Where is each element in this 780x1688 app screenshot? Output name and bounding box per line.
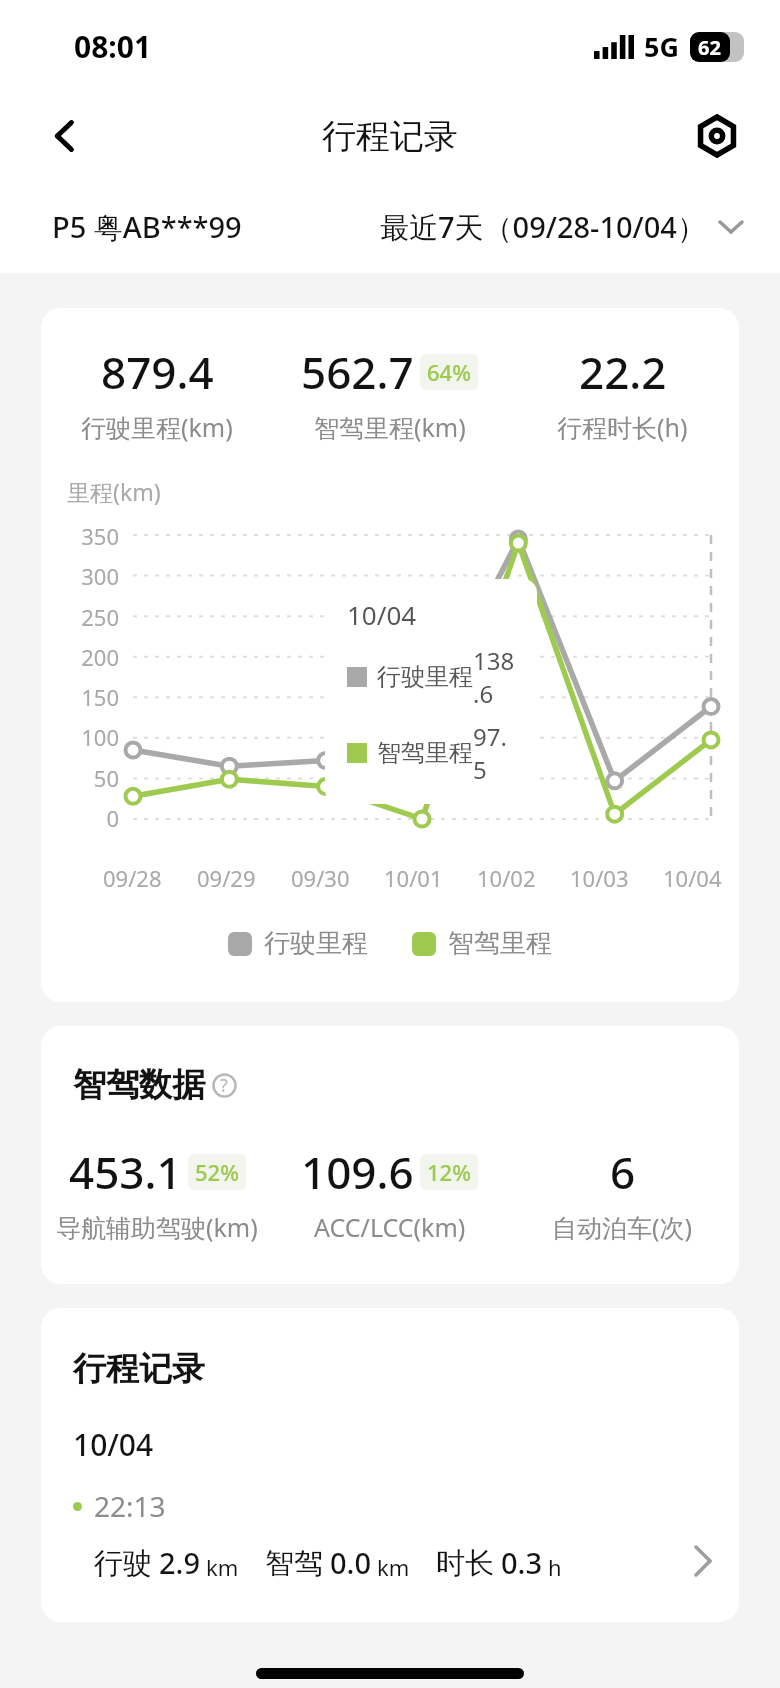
staticText: 453.1 bbox=[69, 1142, 182, 1202]
staticText: 62 bbox=[698, 34, 721, 61]
staticText: 08:01 bbox=[74, 26, 152, 67]
staticText: 52% bbox=[195, 1157, 239, 1187]
staticText: 22:13 bbox=[94, 1487, 166, 1525]
button[interactable]: 22:13 bbox=[41, 1487, 739, 1582]
staticText: 2.9 bbox=[159, 1543, 201, 1582]
staticText: 时长 bbox=[436, 1545, 494, 1582]
staticText: 10/04 bbox=[73, 1424, 154, 1465]
staticText: 109.6 bbox=[301, 1142, 414, 1202]
staticText: 97.5 bbox=[473, 720, 515, 786]
staticText: 64% bbox=[427, 357, 471, 387]
button[interactable]: Info bbox=[209, 1070, 239, 1100]
staticText: 09/29 bbox=[197, 863, 256, 893]
staticText: 行程记录 bbox=[322, 115, 458, 158]
staticText: 22.2 bbox=[579, 342, 667, 402]
staticText: 行驶里程 bbox=[377, 662, 473, 692]
staticText: 350 bbox=[81, 521, 119, 551]
staticText: ACC/LCC(km) bbox=[314, 1210, 466, 1244]
staticText: 300 bbox=[81, 561, 119, 591]
staticText: 0 bbox=[106, 803, 119, 833]
staticText: 12% bbox=[427, 1157, 471, 1187]
staticText: 行驶里程 bbox=[264, 927, 368, 960]
staticText: 10/01 bbox=[384, 863, 443, 893]
staticText: 自动泊车(次) bbox=[552, 1210, 693, 1244]
button[interactable]: P5 粤AB***99 bbox=[52, 207, 242, 247]
staticText: 智驾里程 bbox=[448, 927, 552, 960]
staticText: 行驶里程(km) bbox=[81, 410, 233, 444]
button[interactable]: Settings bbox=[686, 105, 748, 167]
staticText: 行程记录 bbox=[73, 1348, 205, 1390]
staticText: 50 bbox=[93, 763, 119, 793]
staticText: 导航辅助驾驶(km) bbox=[56, 1210, 258, 1244]
staticText: 150 bbox=[81, 682, 119, 712]
staticText: 智驾数据 bbox=[73, 1064, 205, 1106]
staticText: km bbox=[206, 1552, 239, 1582]
staticText: 562.7 bbox=[301, 342, 414, 402]
staticText: h bbox=[548, 1552, 562, 1582]
staticText: 100 bbox=[81, 722, 119, 752]
staticText: 行驶 bbox=[94, 1545, 152, 1582]
staticText: 879.4 bbox=[101, 342, 214, 402]
button[interactable]: 最近7天（09/28-10/04） bbox=[380, 207, 744, 247]
staticText: 最近7天（09/28-10/04） bbox=[380, 207, 706, 247]
button[interactable]: Back bbox=[34, 105, 96, 167]
staticText: 行程时长(h) bbox=[557, 410, 688, 444]
staticText: 10/04 bbox=[663, 863, 722, 893]
staticText: 250 bbox=[81, 602, 119, 632]
staticText: 09/30 bbox=[291, 863, 350, 893]
staticText: 10/02 bbox=[477, 863, 536, 893]
staticText: ? bbox=[220, 1073, 228, 1098]
staticText: 0.0 bbox=[330, 1543, 372, 1582]
staticText: 10/04 bbox=[347, 597, 417, 632]
staticText: 09/28 bbox=[103, 863, 162, 893]
staticText: 智驾里程(km) bbox=[314, 410, 466, 444]
staticText: km bbox=[377, 1552, 410, 1582]
staticText: 10/03 bbox=[570, 863, 629, 893]
staticText: 138.6 bbox=[473, 644, 515, 710]
staticText: 里程(km) bbox=[67, 476, 161, 507]
staticText: 200 bbox=[81, 642, 119, 672]
staticText: 智驾里程 bbox=[377, 738, 473, 768]
staticText: 0.3 bbox=[501, 1543, 543, 1582]
staticText: 6 bbox=[610, 1142, 636, 1202]
staticText: 智驾 bbox=[265, 1545, 323, 1582]
staticText: 5G bbox=[644, 28, 679, 65]
